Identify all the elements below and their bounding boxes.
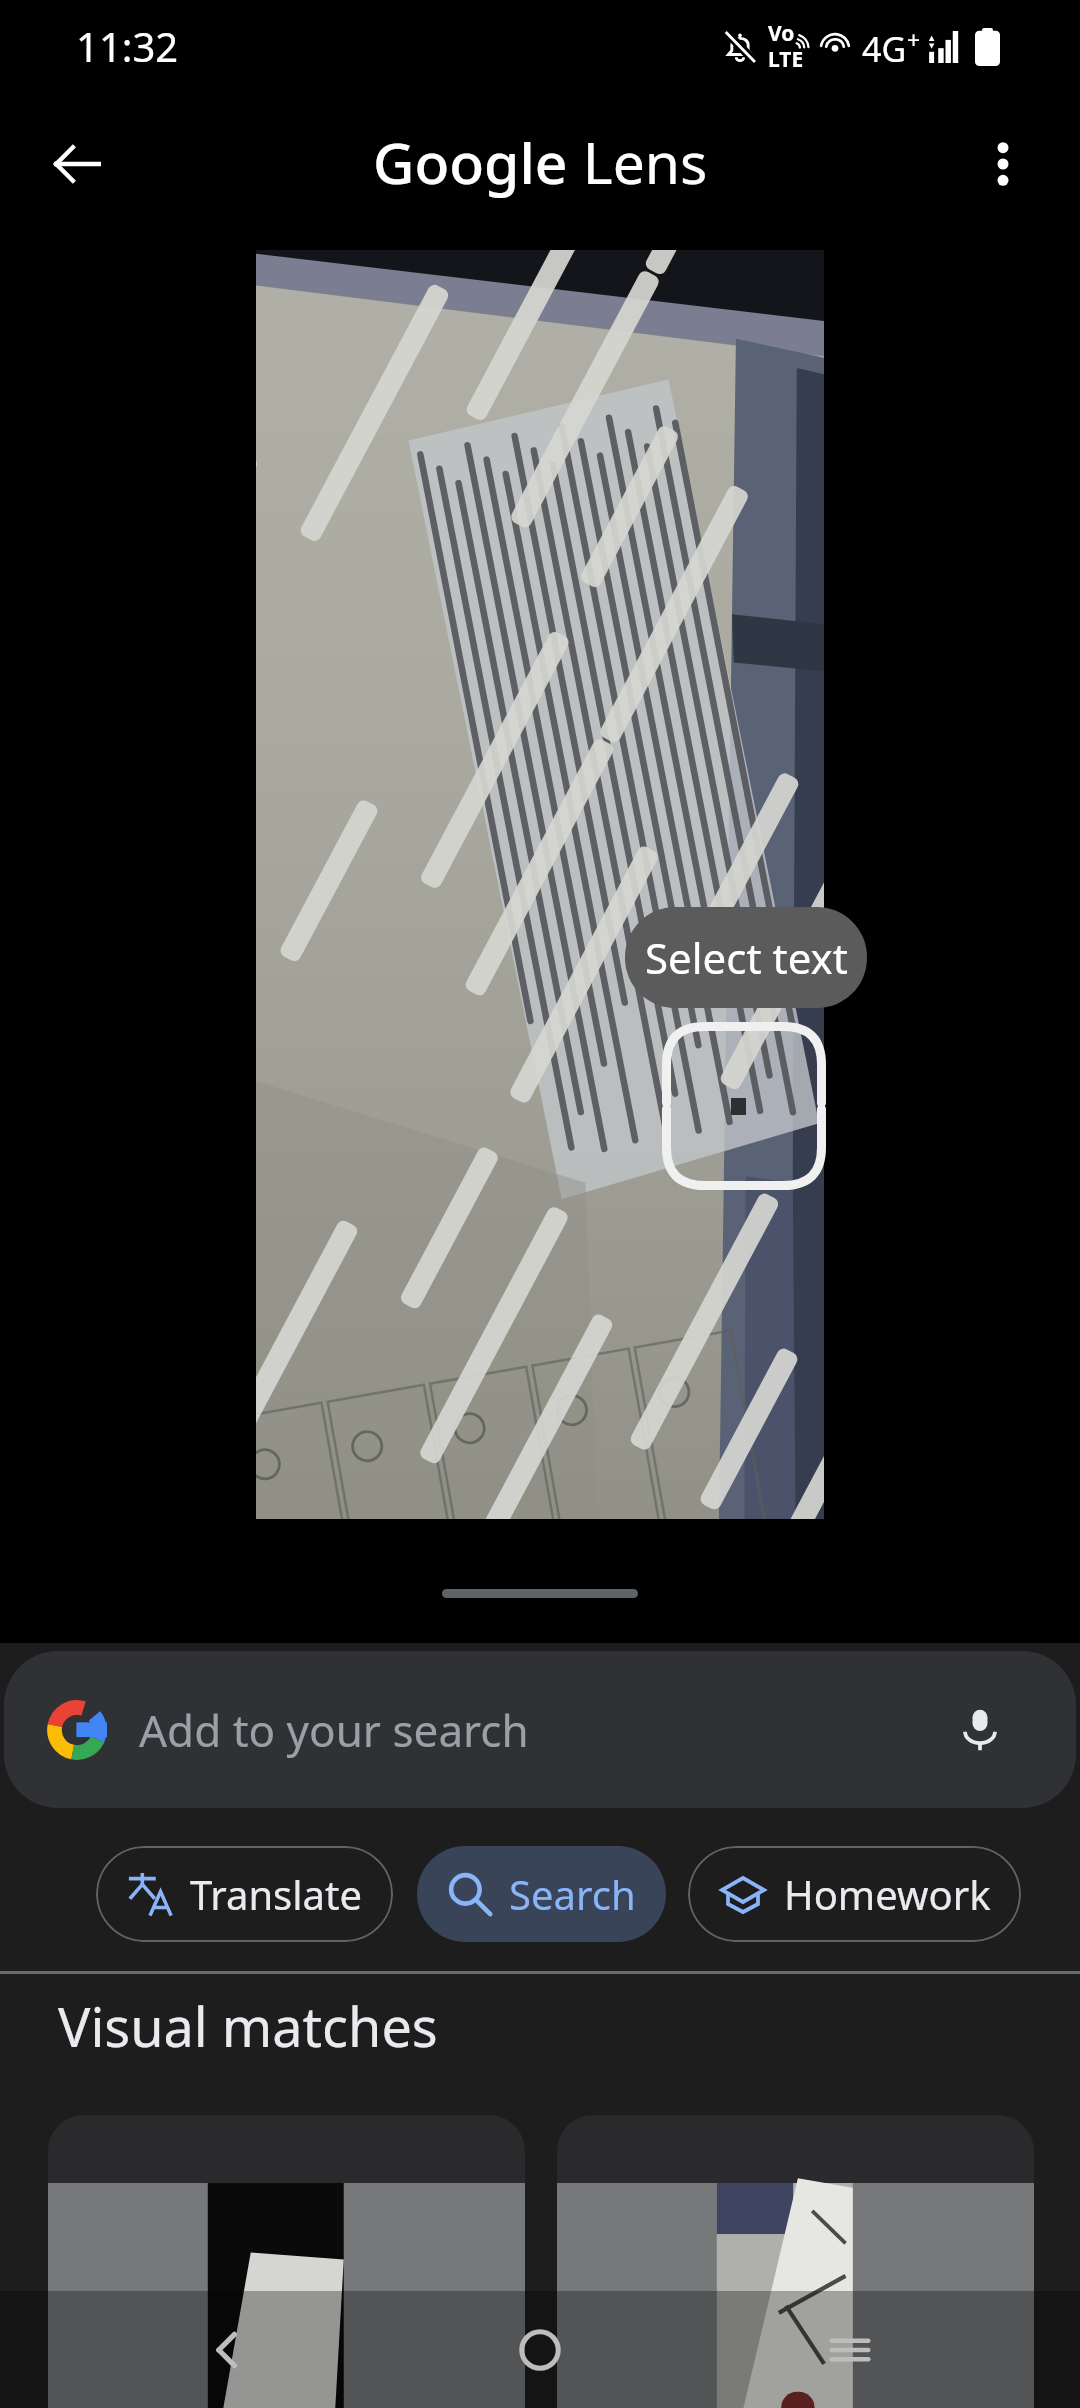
staticText: + [907,24,921,55]
staticText: LTE [768,45,804,74]
button[interactable]: Home [472,2291,608,2408]
button[interactable]: Voice search [942,1692,1018,1768]
staticText: Select text [645,929,848,986]
staticText: Search [509,1867,636,1921]
staticText: 11:32 [76,19,179,73]
staticText: Lens [568,123,708,201]
button[interactable] [557,2115,1034,2408]
staticText: Google [373,123,568,201]
button[interactable]: Homework [688,1846,1021,1942]
button[interactable]: Search [417,1846,666,1942]
staticText: Vo [768,19,795,48]
button[interactable]: Back [34,121,120,207]
button[interactable]: Back [160,2291,296,2408]
staticText: Add to your search [139,1700,529,1760]
button[interactable]: Select text [625,907,867,1008]
staticText: Translate [190,1867,363,1921]
button[interactable] [48,2115,525,2408]
button[interactable]: Add to your search [4,1651,1076,1808]
button[interactable]: Translate [96,1846,393,1942]
staticText: Homework [784,1867,991,1921]
staticText: Visual matches [58,1989,438,2063]
button[interactable]: More options [960,121,1046,207]
staticText: 4G [862,26,907,72]
button[interactable]: Recent apps [782,2291,918,2408]
